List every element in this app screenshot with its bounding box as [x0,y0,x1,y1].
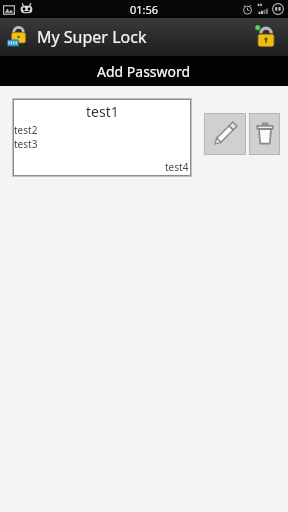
staticText: test3 [14,137,38,151]
button[interactable]: Delete [249,113,280,155]
staticText: test1 [86,102,119,121]
button[interactable]: Edit [204,113,246,155]
button[interactable]: test1 [13,99,191,176]
staticText: Add Password [97,62,191,81]
staticText: test2 [14,123,38,137]
staticText: test4 [165,160,189,174]
button[interactable]: Add Password [0,56,288,86]
staticText: My Super Lock [37,26,147,48]
staticText: 01:56 [130,2,159,17]
button[interactable]: Lock [251,22,281,52]
